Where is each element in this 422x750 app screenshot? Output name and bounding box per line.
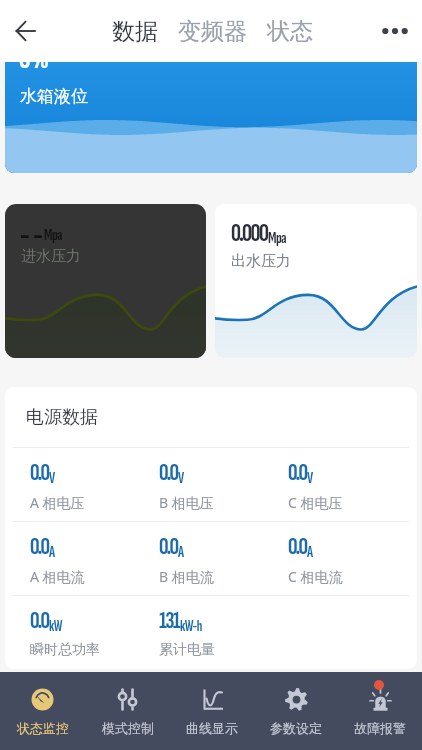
staticText: 变频器 xyxy=(178,17,247,46)
staticText: 瞬时总功率 xyxy=(30,641,100,659)
staticText: Mpa xyxy=(44,226,63,245)
staticText: 131 xyxy=(159,606,180,635)
button[interactable]: Back xyxy=(2,8,48,54)
staticText: 0.0 xyxy=(159,532,178,561)
staticText: B 相电压 xyxy=(159,493,214,512)
staticText: 0% xyxy=(19,62,49,77)
staticText: A 相电流 xyxy=(30,567,85,586)
staticText: kW-h xyxy=(180,617,202,635)
staticText: 曲线显示 xyxy=(186,720,238,736)
staticText: 故障报警 xyxy=(354,720,406,736)
staticText: C 相电压 xyxy=(288,493,343,512)
button[interactable]: 曲线显示 xyxy=(170,672,254,750)
staticText: kW xyxy=(49,617,62,635)
staticText: 0.0 xyxy=(30,532,49,561)
staticText: 数据 xyxy=(112,17,158,46)
button[interactable]: 变频器 xyxy=(173,10,252,53)
button[interactable]: 0.000 xyxy=(215,204,417,358)
button[interactable]: More options xyxy=(372,8,418,54)
staticText: V xyxy=(178,469,184,487)
button[interactable]: Mpa xyxy=(5,204,206,358)
staticText: 参数设定 xyxy=(270,720,322,736)
staticText: 0.0 xyxy=(30,458,49,487)
staticText: Mpa xyxy=(268,229,287,248)
staticText: 电源数据 xyxy=(26,406,98,429)
button[interactable]: 模式控制 xyxy=(85,672,170,750)
staticText: C 相电流 xyxy=(288,567,343,586)
staticText: 0.000 xyxy=(231,218,268,248)
staticText: A 相电压 xyxy=(30,493,85,512)
staticText: A xyxy=(307,543,313,561)
staticText: V xyxy=(307,469,313,487)
staticText: 0.0 xyxy=(288,532,307,561)
staticText: A xyxy=(178,543,184,561)
staticText: 出水压力 xyxy=(231,252,291,271)
button[interactable]: 数据 xyxy=(107,10,163,53)
staticText: 0.0 xyxy=(30,606,49,635)
staticText: 进水压力 xyxy=(21,247,81,266)
button[interactable]: 状态 xyxy=(262,10,318,53)
staticText: 水箱液位 xyxy=(20,86,88,107)
button[interactable]: 故障报警 xyxy=(338,672,422,750)
staticText: B 相电流 xyxy=(159,567,214,586)
staticText: 模式控制 xyxy=(102,720,154,736)
staticText: 状态 xyxy=(267,17,313,46)
staticText: A xyxy=(49,543,55,561)
staticText: 状态监控 xyxy=(17,720,69,736)
button[interactable]: 状态监控 xyxy=(0,672,85,750)
staticText: V xyxy=(49,469,55,487)
staticText: 累计电量 xyxy=(159,641,215,659)
button[interactable]: 0% xyxy=(5,62,417,173)
staticText: 0.0 xyxy=(288,458,307,487)
button[interactable]: 参数设定 xyxy=(254,672,338,750)
staticText: 0.0 xyxy=(159,458,178,487)
